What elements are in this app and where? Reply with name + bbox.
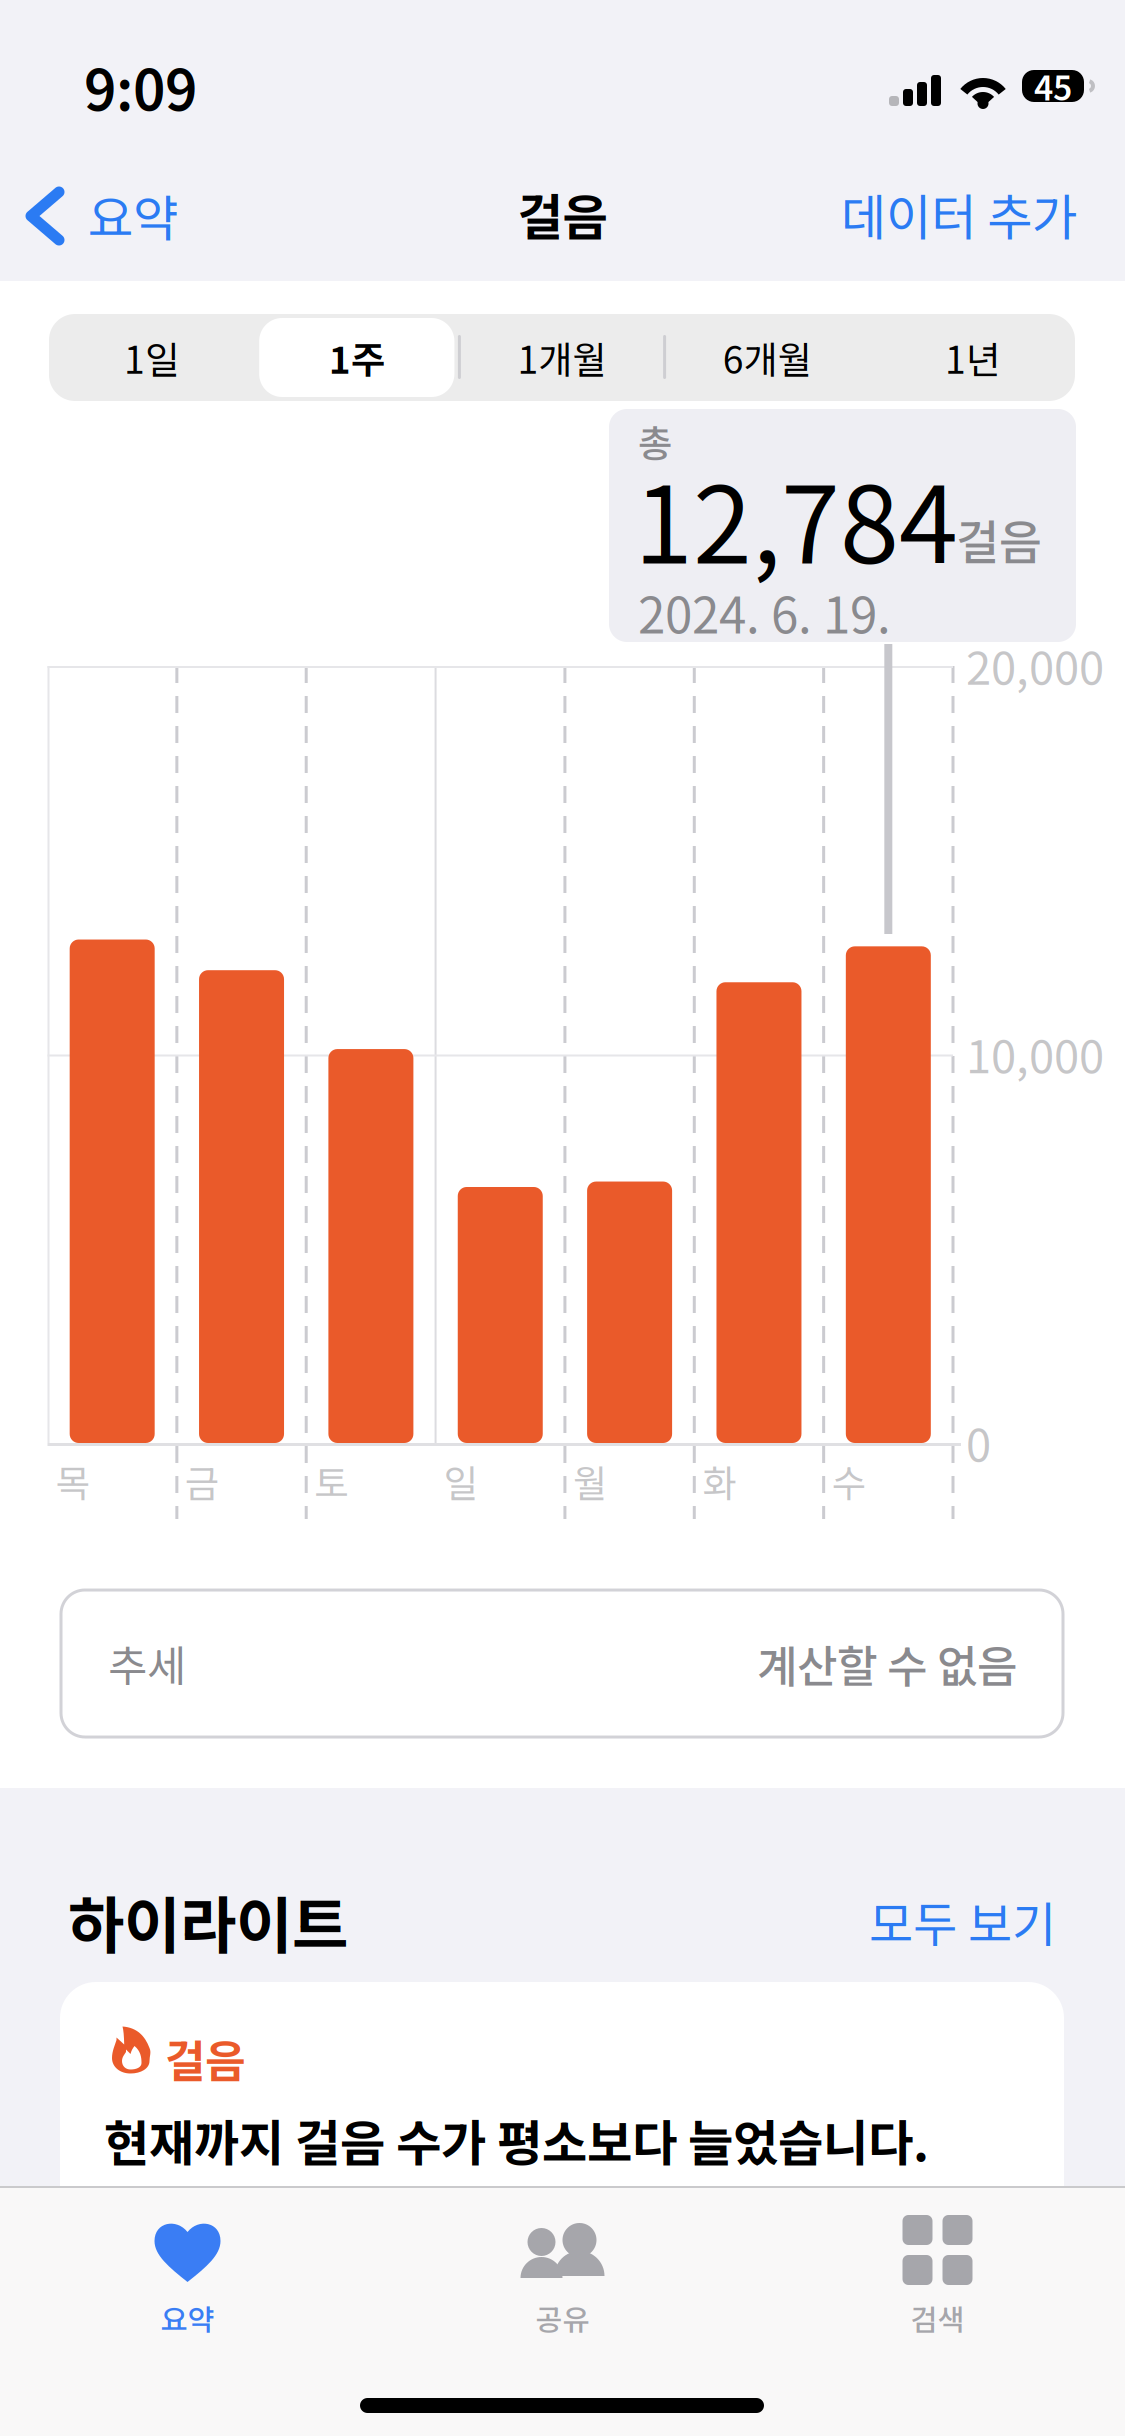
button[interactable]: 요약 bbox=[0, 160, 230, 270]
staticText: 수 bbox=[832, 1454, 866, 1508]
staticText: 화 bbox=[702, 1454, 736, 1508]
staticText: 월 bbox=[573, 1454, 607, 1508]
button[interactable]: 모두 보기 bbox=[776, 1881, 1056, 1961]
staticText: 요약 bbox=[88, 179, 178, 251]
button[interactable]: 1년 bbox=[870, 314, 1075, 401]
staticText: 걸음 bbox=[517, 178, 607, 250]
staticText: 9:09 bbox=[84, 45, 197, 127]
staticText: 10,000 bbox=[966, 1021, 1104, 1086]
button[interactable]: 데이터 추가 bbox=[747, 164, 1125, 264]
staticText: 모두 보기 bbox=[869, 1886, 1056, 1956]
staticText: 총 bbox=[638, 414, 672, 468]
staticText: 12,784 bbox=[634, 440, 958, 594]
staticText: 1주 bbox=[329, 330, 385, 385]
staticText: 0 bbox=[966, 1409, 991, 1475]
button[interactable]: 1개월 bbox=[459, 314, 665, 401]
staticText: 금 bbox=[185, 1454, 219, 1508]
staticText: 45 bbox=[1034, 62, 1072, 110]
staticText: 일 bbox=[444, 1454, 478, 1508]
staticText: 1개월 bbox=[517, 330, 606, 385]
button[interactable]: 1주 bbox=[254, 314, 459, 401]
staticText: 1년 bbox=[945, 330, 1000, 385]
staticText: 요약 bbox=[160, 2297, 214, 2339]
staticText: 20,000 bbox=[966, 632, 1104, 698]
button[interactable]: 추세 bbox=[61, 1590, 1063, 1737]
staticText: 하이라이트 bbox=[68, 1877, 348, 1965]
button[interactable]: 1일 bbox=[49, 314, 254, 401]
staticText: 6개월 bbox=[723, 330, 812, 385]
staticText: 데이터 추가 bbox=[841, 178, 1077, 250]
staticText: 검색 bbox=[910, 2297, 964, 2339]
button[interactable]: 공유 bbox=[375, 2206, 750, 2356]
button[interactable]: 검색 bbox=[750, 2206, 1125, 2356]
staticText: 1일 bbox=[124, 330, 179, 385]
staticText: 토 bbox=[314, 1454, 348, 1508]
button[interactable]: 요약 bbox=[0, 2206, 375, 2356]
staticText: 계산할 수 없음 bbox=[757, 1632, 1017, 1695]
staticText: 걸음 bbox=[956, 505, 1042, 573]
staticText: 공유 bbox=[535, 2297, 589, 2339]
button[interactable]: 6개월 bbox=[665, 314, 870, 401]
staticText: 추세 bbox=[108, 1633, 186, 1694]
button[interactable]: 걸음 bbox=[60, 1982, 1064, 2312]
staticText: 목 bbox=[55, 1454, 89, 1508]
staticText: 걸음 bbox=[165, 2026, 245, 2090]
staticText: 현재까지 걸음 수가 평소보다 늘었습니다. bbox=[104, 2104, 929, 2176]
staticText: 2024. 6. 19. bbox=[638, 576, 891, 648]
